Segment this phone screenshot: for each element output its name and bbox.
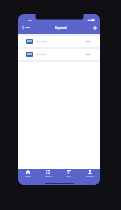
- staticText: Orders: [45, 175, 52, 178]
- staticText: Payment: [55, 26, 67, 30]
- button[interactable]: Cart: [58, 170, 79, 180]
- staticText: Back: [25, 26, 30, 29]
- button[interactable]: Add card: [89, 21, 100, 34]
- staticText: Delete: [85, 53, 92, 56]
- staticText: **** 1234: [36, 40, 47, 43]
- staticText: 9:41: [28, 19, 33, 22]
- staticText: Cart: [66, 175, 71, 178]
- staticText: **** 4321: [36, 53, 47, 56]
- button[interactable]: **** 1234: [18, 36, 100, 47]
- button[interactable]: **** 4321: [18, 49, 100, 60]
- button[interactable]: Back: [18, 21, 33, 34]
- staticText: Home: [25, 175, 31, 178]
- staticText: Account: [86, 175, 94, 178]
- button[interactable]: Account: [79, 170, 100, 180]
- button[interactable]: Home: [18, 170, 38, 180]
- staticText: Delete: [85, 40, 92, 43]
- button[interactable]: Orders: [38, 170, 58, 180]
